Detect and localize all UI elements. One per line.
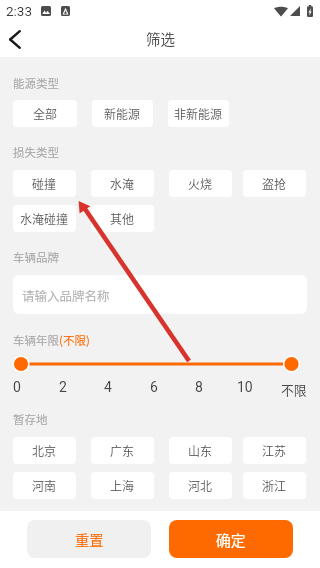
staticText: 6 — [150, 379, 158, 395]
staticText: 确定 — [216, 529, 246, 550]
button[interactable]: 河北 — [169, 472, 232, 499]
staticText: 水淹 — [110, 175, 135, 192]
button[interactable]: 非新能源 — [168, 100, 229, 127]
button[interactable]: 新能源 — [92, 100, 153, 127]
staticText: 2 — [59, 379, 67, 395]
staticText: 非新能源 — [174, 105, 223, 122]
button[interactable]: 重置 — [27, 520, 151, 558]
staticText: 车辆年限(不限) — [13, 332, 90, 349]
button[interactable]: 山东 — [169, 437, 232, 464]
button[interactable]: 上海 — [91, 472, 154, 499]
staticText: 损失类型 — [13, 144, 59, 161]
staticText: 重置 — [75, 529, 104, 550]
staticText: 其他 — [110, 210, 135, 227]
staticText: 全部 — [33, 105, 58, 122]
button[interactable]: 全部 — [13, 100, 77, 127]
button[interactable]: 火烧 — [169, 170, 232, 197]
button[interactable]: 盗抢 — [243, 170, 306, 197]
staticText: 上海 — [110, 477, 135, 494]
button[interactable]: 确定 — [169, 520, 293, 558]
staticText: 请输入品牌名称 — [22, 286, 110, 304]
staticText: 能源类型 — [13, 75, 59, 92]
staticText: 暂存地 — [13, 411, 48, 428]
staticText: 北京 — [32, 442, 57, 459]
button[interactable]: 请输入品牌名称 — [13, 275, 307, 314]
button[interactable]: 其他 — [91, 205, 154, 232]
staticText: 碰撞 — [32, 175, 57, 192]
staticText: 2:33 — [6, 3, 33, 19]
button[interactable]: 水淹碰撞 — [13, 205, 76, 232]
button[interactable]: 广东 — [91, 437, 154, 464]
button[interactable]: 河南 — [13, 472, 76, 499]
staticText: 不限 — [281, 380, 307, 399]
staticText: 盗抢 — [262, 175, 287, 192]
staticText: 0 — [13, 379, 21, 395]
staticText: 火烧 — [188, 175, 213, 192]
staticText: 广东 — [110, 442, 135, 459]
button[interactable]: 江苏 — [243, 437, 306, 464]
staticText: 4 — [104, 379, 112, 395]
button[interactable]: 浙江 — [243, 472, 306, 499]
staticText: 水淹碰撞 — [20, 210, 69, 227]
staticText: 山东 — [188, 442, 213, 459]
staticText: 新能源 — [104, 105, 141, 122]
staticText: 河北 — [188, 477, 213, 494]
button[interactable]: Back — [0, 21, 29, 57]
staticText: 河南 — [32, 477, 57, 494]
button[interactable]: 碰撞 — [13, 170, 76, 197]
button[interactable]: 水淹 — [91, 170, 154, 197]
button[interactable]: 北京 — [13, 437, 76, 464]
staticText: 车辆品牌 — [13, 249, 59, 266]
staticText: 江苏 — [262, 442, 287, 459]
staticText: 筛选 — [146, 28, 175, 49]
staticText: 10 — [237, 379, 253, 395]
staticText: 浙江 — [262, 477, 287, 494]
staticText: 8 — [195, 379, 203, 395]
